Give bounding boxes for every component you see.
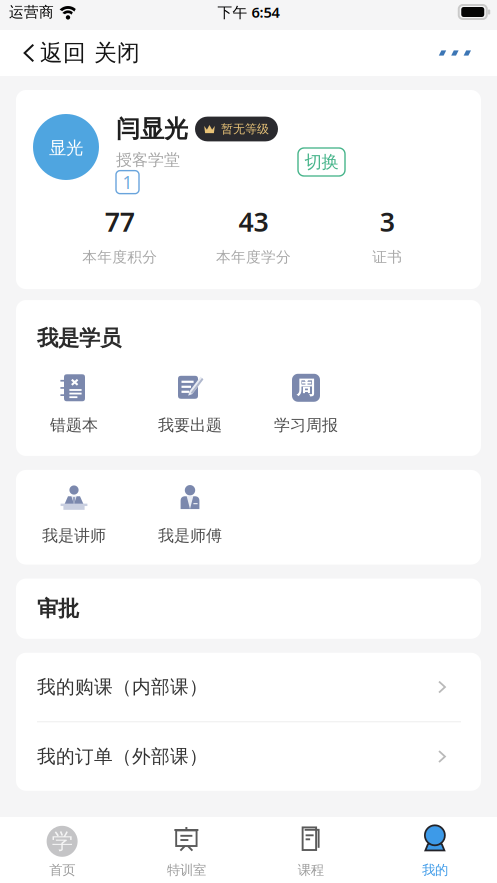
staticText: 周 (296, 376, 315, 399)
button[interactable]: More options (429, 30, 497, 76)
button[interactable]: 周 (248, 373, 364, 435)
button[interactable]: 特训室 (124, 817, 248, 883)
staticText: 暂无等级 (221, 122, 269, 136)
staticText: 课程 (298, 862, 324, 878)
staticText: 学 (52, 828, 73, 854)
staticText: 审批 (37, 596, 79, 622)
staticText: 显光 (49, 137, 83, 159)
staticText: 特训室 (167, 862, 206, 878)
button[interactable]: 我是讲师 (16, 484, 132, 546)
staticText: 授客学堂 (116, 150, 180, 170)
button[interactable]: 关闭 (86, 30, 146, 76)
staticText: 43 (238, 204, 268, 239)
button[interactable]: 我要出题 (132, 373, 248, 435)
button[interactable]: 错题本 (16, 373, 132, 435)
staticText: 错题本 (50, 415, 98, 435)
staticText: 关闭 (94, 39, 140, 67)
staticText: 首页 (49, 862, 75, 878)
button[interactable]: 返回 (0, 30, 86, 76)
staticText: 我是师傅 (158, 526, 222, 546)
staticText: 我的购课（内部课） (37, 676, 208, 698)
staticText: 返回 (40, 39, 86, 67)
staticText: 1 (122, 171, 132, 194)
staticText: 证书 (372, 248, 402, 266)
staticText: 切换 (304, 151, 338, 173)
staticText: 77 (105, 204, 135, 239)
button[interactable]: 我的订单（外部课） (16, 722, 481, 791)
staticText: 下午 6:54 (217, 2, 279, 22)
button[interactable]: 我的 (373, 817, 497, 883)
staticText: 我是讲师 (42, 526, 106, 546)
staticText: 本年度学分 (216, 248, 291, 266)
staticText: 本年度积分 (82, 248, 157, 266)
button[interactable]: 切换 (298, 148, 345, 176)
staticText: 我要出题 (158, 415, 222, 435)
staticText: 运营商 (9, 3, 54, 21)
staticText: 我的 (422, 862, 448, 878)
button[interactable]: 学 (0, 817, 124, 883)
staticText: 我的订单（外部课） (37, 745, 208, 768)
staticText: 学习周报 (274, 415, 338, 435)
staticText: 我是学员 (37, 325, 121, 351)
button[interactable]: 我是师傅 (132, 484, 248, 546)
button[interactable]: 课程 (248, 817, 373, 883)
button[interactable]: 我的购课（内部课） (16, 653, 481, 721)
staticText: 闫显光 (116, 114, 188, 144)
staticText: 3 (380, 204, 395, 239)
